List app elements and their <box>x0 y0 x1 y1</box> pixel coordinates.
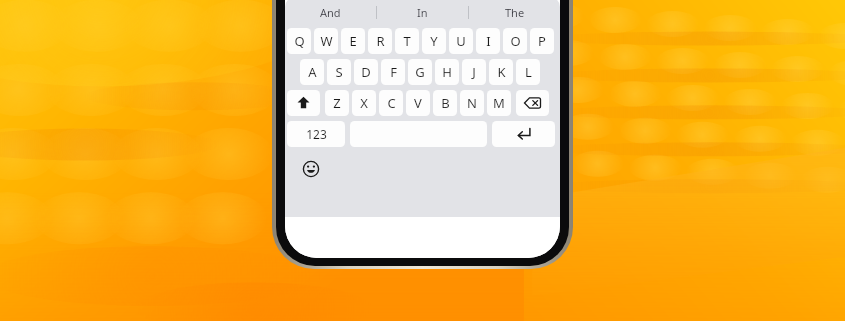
button[interactable]: I <box>476 28 500 54</box>
button[interactable]: Shift <box>287 90 320 116</box>
button[interactable]: O <box>503 28 527 54</box>
button[interactable]: T <box>395 28 419 54</box>
staticText: Y <box>430 32 438 50</box>
staticText: In <box>417 5 428 20</box>
staticText: J <box>472 63 476 81</box>
staticText: T <box>403 32 411 50</box>
button[interactable]: H <box>435 59 459 85</box>
button[interactable]: Z <box>325 90 349 116</box>
staticText: V <box>414 94 422 112</box>
button[interactable]: Q <box>287 28 311 54</box>
button[interactable]: K <box>489 59 513 85</box>
button[interactable]: V <box>406 90 430 116</box>
staticText: R <box>376 32 385 50</box>
button[interactable]: G <box>408 59 432 85</box>
button[interactable]: Y <box>422 28 446 54</box>
staticText: X <box>360 94 368 112</box>
button[interactable]: P <box>530 28 554 54</box>
staticText: F <box>390 63 397 81</box>
staticText: A <box>308 63 317 81</box>
staticText: L <box>525 63 532 81</box>
button[interactable]: In <box>377 1 468 23</box>
button[interactable]: Return <box>492 121 555 147</box>
button[interactable]: Emoji <box>299 157 323 181</box>
button[interactable]: X <box>352 90 376 116</box>
button[interactable]: The <box>469 1 560 23</box>
staticText: G <box>415 63 425 81</box>
button[interactable]: A <box>300 59 324 85</box>
button[interactable]: F <box>381 59 405 85</box>
button[interactable]: D <box>354 59 378 85</box>
button[interactable]: N <box>460 90 484 116</box>
staticText: K <box>497 63 506 81</box>
staticText: H <box>442 63 452 81</box>
staticText: M <box>493 94 505 112</box>
staticText: The <box>505 5 525 20</box>
staticText: S <box>335 63 343 81</box>
button[interactable]: J <box>462 59 486 85</box>
staticText: W <box>320 32 333 50</box>
staticText: O <box>510 32 521 50</box>
button[interactable]: 123 <box>287 121 345 147</box>
button[interactable]: Backspace <box>516 90 549 116</box>
button[interactable]: And <box>285 1 376 23</box>
staticText: E <box>349 32 357 50</box>
button[interactable]: W <box>314 28 338 54</box>
button[interactable]: U <box>449 28 473 54</box>
staticText: And <box>320 5 341 20</box>
staticText: 123 <box>306 126 327 142</box>
staticText: B <box>441 94 450 112</box>
staticText: N <box>467 94 477 112</box>
button[interactable]: C <box>379 90 403 116</box>
button[interactable]: B <box>433 90 457 116</box>
staticText: U <box>456 32 466 50</box>
button[interactable]: R <box>368 28 392 54</box>
staticText: Z <box>333 94 341 112</box>
staticText: Q <box>294 32 305 50</box>
button[interactable]: L <box>516 59 540 85</box>
button[interactable]: M <box>487 90 511 116</box>
staticText: I <box>486 32 491 50</box>
staticText: D <box>361 63 371 81</box>
button[interactable]: E <box>341 28 365 54</box>
staticText: C <box>387 94 396 112</box>
button[interactable]: S <box>327 59 351 85</box>
staticText: P <box>538 32 546 50</box>
